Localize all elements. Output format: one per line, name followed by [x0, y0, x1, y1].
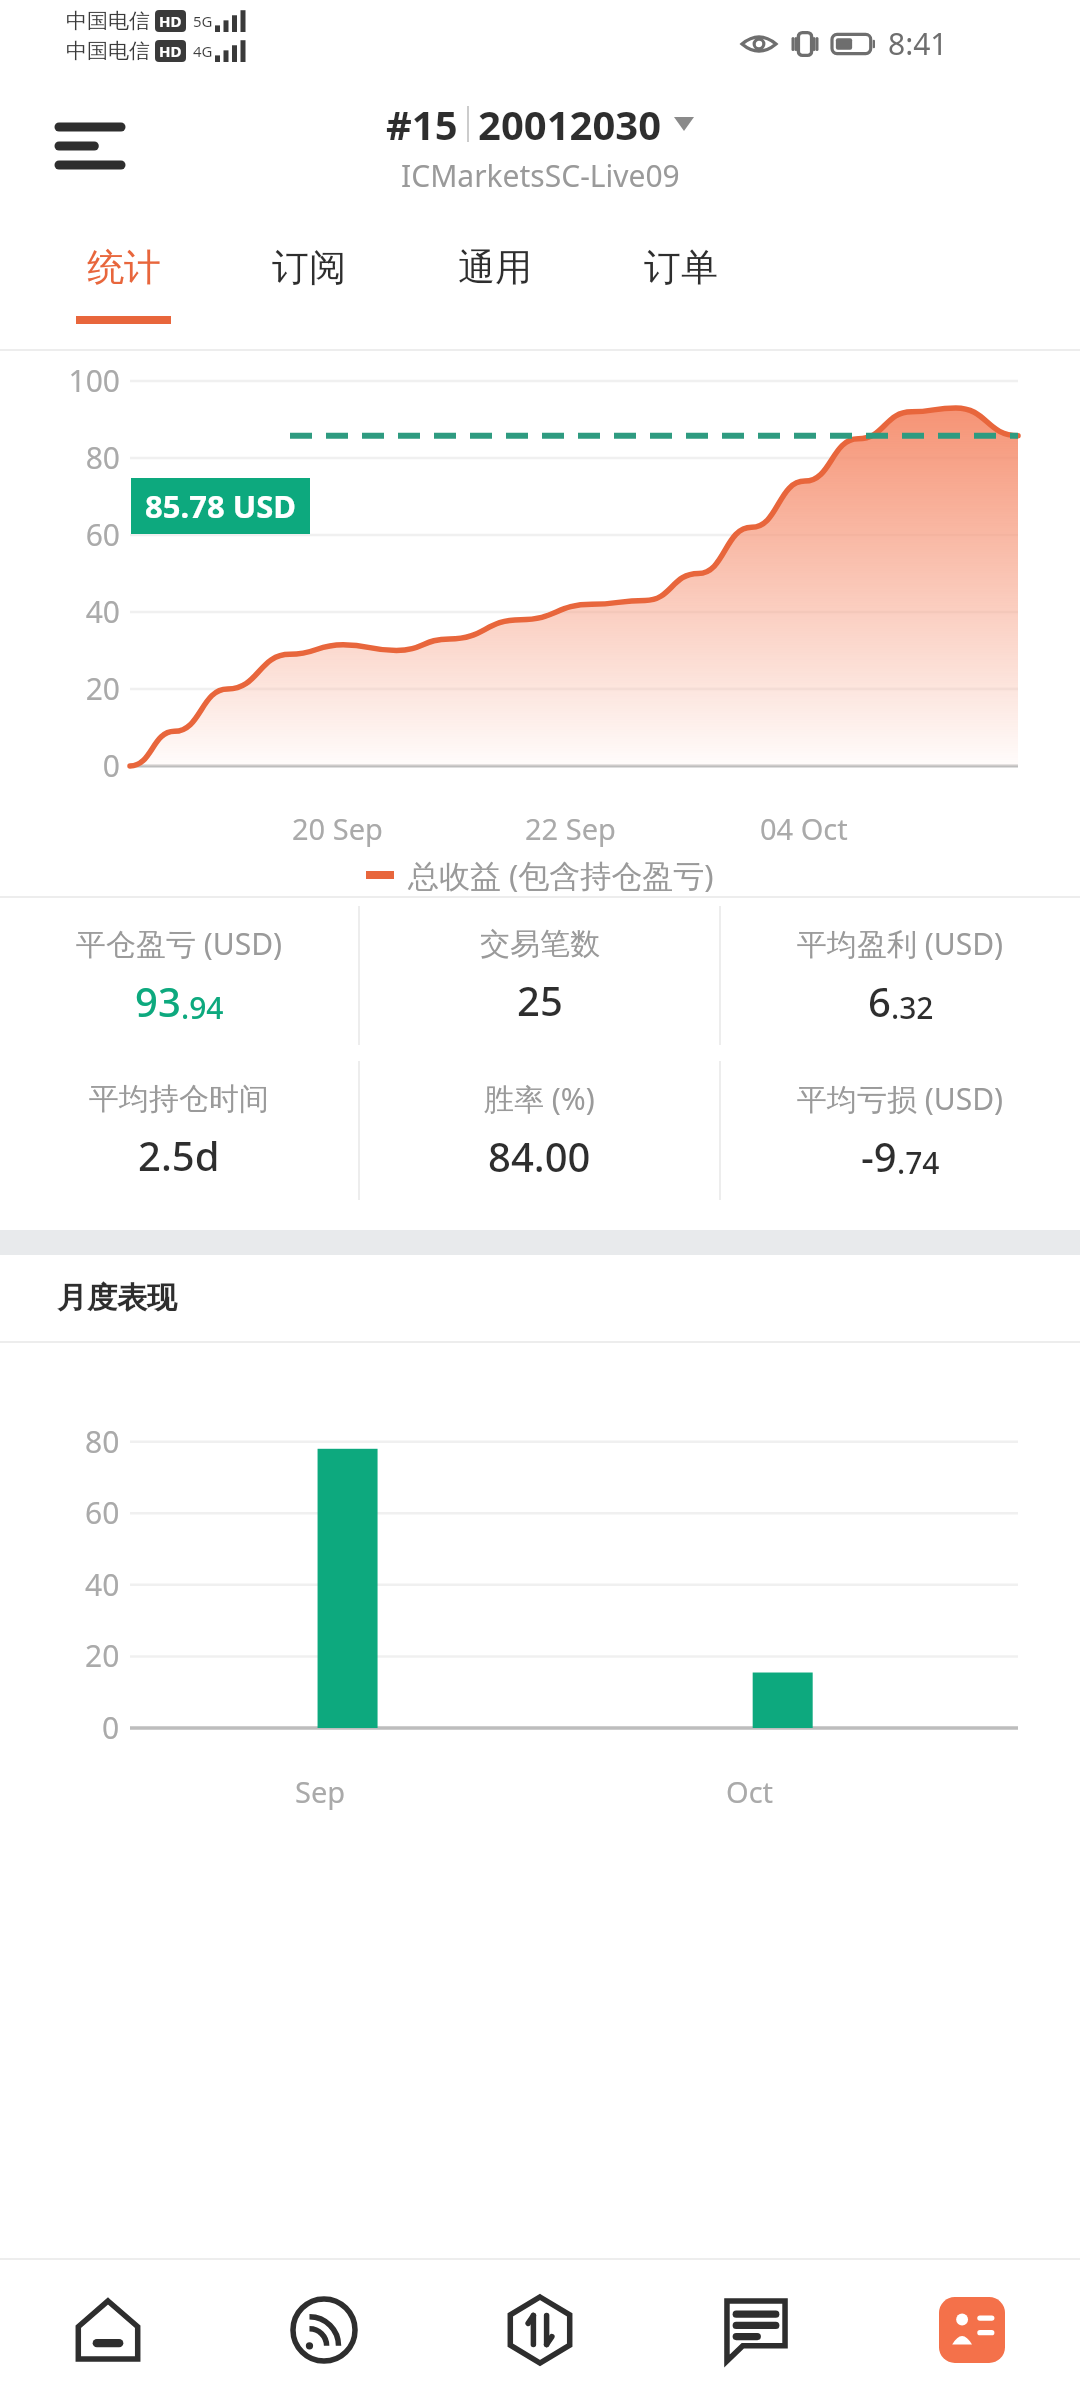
staticText: 40 — [85, 1564, 120, 1605]
staticText: 平均亏损 (USD) — [797, 1078, 1004, 1119]
staticText: 04 Oct — [760, 809, 848, 848]
staticText: 订阅 — [272, 244, 346, 291]
staticText: 20 — [85, 1635, 120, 1676]
staticText: 订单 — [644, 244, 718, 291]
button[interactable]: 订阅 — [216, 226, 402, 336]
staticText: .32 — [891, 987, 934, 1028]
button[interactable]: 订单 — [588, 226, 774, 336]
staticText: 2.5d — [138, 1128, 220, 1182]
staticText: 中国电信 — [66, 8, 150, 34]
staticText: 交易笔数 — [480, 925, 600, 963]
staticText: 85.78 USD — [145, 485, 296, 527]
staticText: 通用 — [458, 244, 532, 291]
button[interactable]: 统计 — [30, 226, 216, 336]
staticText: 胜率 (%) — [484, 1078, 595, 1119]
staticText: 平均盈利 (USD) — [797, 923, 1004, 964]
button[interactable]: Home — [0, 2260, 216, 2400]
staticText: HD — [159, 11, 182, 31]
button[interactable]: Trade — [432, 2260, 648, 2400]
staticText: 中国电信 — [66, 38, 150, 64]
staticText: 60 — [85, 514, 120, 555]
staticText: 8:41 — [888, 23, 948, 64]
button[interactable]: 平均亏损 (USD) — [721, 1053, 1080, 1208]
staticText: ICMarketsSC-Live09 — [401, 155, 680, 196]
staticText: 统计 — [87, 244, 161, 291]
button[interactable]: 平均盈利 (USD) — [721, 898, 1080, 1053]
staticText: 80 — [85, 437, 120, 478]
staticText: 平均持仓时间 — [89, 1080, 269, 1118]
staticText: 20 Sep — [292, 809, 383, 848]
button[interactable]: 平仓盈亏 (USD) — [0, 898, 358, 1053]
staticText: 22 Sep — [525, 809, 616, 848]
staticText: 80 — [85, 1421, 120, 1462]
staticText: 20 — [85, 668, 120, 709]
staticText: 0 — [102, 1707, 120, 1748]
button[interactable]: 交易笔数 — [360, 898, 719, 1053]
button[interactable]: Menu — [40, 96, 140, 196]
button[interactable]: Quotes — [216, 2260, 432, 2400]
staticText: Sep — [295, 1772, 346, 1811]
button[interactable]: 平均持仓时间 — [0, 1053, 358, 1208]
staticText: 6 — [868, 974, 891, 1028]
staticText: .94 — [181, 987, 224, 1028]
staticText: 月度表现 — [57, 1279, 177, 1317]
staticText: 60 — [85, 1492, 120, 1533]
staticText: 总收益 (包含持仓盈亏) — [408, 854, 714, 896]
staticText: #15 — [386, 97, 458, 151]
staticText: 100 — [68, 360, 120, 401]
staticText: 4G — [193, 41, 213, 61]
staticText: Oct — [726, 1772, 774, 1811]
staticText: 5G — [193, 11, 213, 31]
button[interactable]: Account — [864, 2260, 1080, 2400]
button[interactable]: 胜率 (%) — [360, 1053, 719, 1208]
staticText: -9 — [861, 1129, 897, 1183]
staticText: HD — [159, 41, 182, 61]
staticText: 40 — [85, 591, 120, 632]
staticText: 0 — [102, 745, 120, 786]
staticText: 20012030 — [478, 97, 662, 151]
staticText: .74 — [897, 1142, 940, 1183]
button[interactable]: 通用 — [402, 226, 588, 336]
staticText: 84.00 — [488, 1129, 591, 1183]
staticText: 25 — [517, 973, 563, 1027]
staticText: 平仓盈亏 (USD) — [76, 923, 283, 964]
staticText: 93 — [135, 974, 181, 1028]
button[interactable]: Messages — [648, 2260, 864, 2400]
